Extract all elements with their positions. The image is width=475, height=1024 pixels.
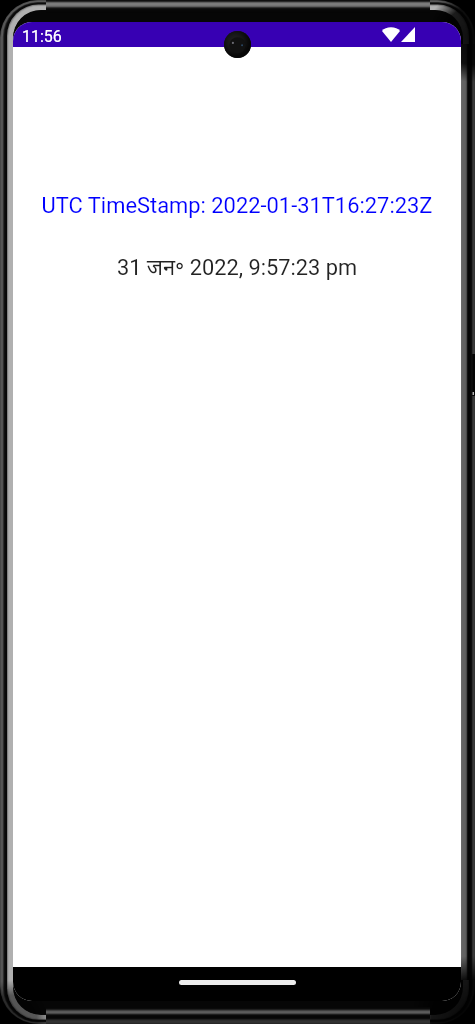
other: Mobile signal	[401, 27, 415, 42]
other: Wi-Fi	[382, 27, 400, 42]
other: Front camera	[224, 31, 251, 58]
staticText: 31 जन॰ 2022, 9:57:23 pm	[13, 252, 461, 282]
button[interactable]: UTC TimeStamp: 2022-01-31T16:27:23Z	[13, 193, 461, 219]
staticText: 11:56	[22, 27, 62, 46]
button[interactable]: Home gesture bar	[13, 967, 461, 1001]
